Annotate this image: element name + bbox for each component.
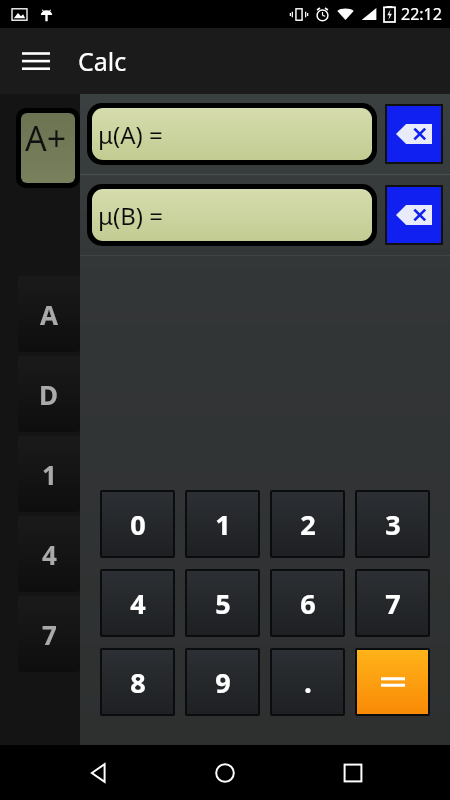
button[interactable]: 7 bbox=[357, 571, 428, 635]
button[interactable]: 9 bbox=[187, 650, 258, 714]
button[interactable]: Back bbox=[68, 745, 128, 800]
button[interactable]: A+ bbox=[21, 113, 75, 183]
staticText: D bbox=[39, 377, 59, 412]
staticText: 8 bbox=[130, 664, 146, 701]
button[interactable]: 5 bbox=[187, 571, 258, 635]
button[interactable]: Recent apps bbox=[323, 745, 383, 800]
staticText: 5 bbox=[215, 585, 231, 622]
button[interactable]: 1 bbox=[18, 436, 80, 512]
button[interactable]: Home bbox=[195, 745, 255, 800]
button[interactable]: 7 bbox=[18, 596, 80, 672]
button[interactable]: D bbox=[18, 356, 80, 432]
staticText: μ(B) = bbox=[98, 199, 163, 232]
button[interactable]: 2 bbox=[272, 492, 343, 556]
button[interactable]: μ(A) = bbox=[92, 108, 372, 160]
staticText: 6 bbox=[300, 585, 316, 622]
staticText: 22:12 bbox=[401, 3, 442, 25]
staticText: 2 bbox=[300, 506, 316, 543]
staticText: 4 bbox=[130, 585, 146, 622]
staticText: A bbox=[40, 297, 58, 332]
staticText: 7 bbox=[42, 617, 57, 652]
button[interactable]: Backspace bbox=[387, 106, 441, 162]
button[interactable]: 4 bbox=[18, 516, 80, 592]
button[interactable]: 1 bbox=[187, 492, 258, 556]
staticText: 0 bbox=[130, 506, 146, 543]
staticText: 1 bbox=[215, 506, 231, 543]
button[interactable]: Open navigation drawer bbox=[14, 39, 58, 83]
staticText: 1 bbox=[42, 457, 57, 492]
button[interactable]: 3 bbox=[357, 492, 428, 556]
staticText: 3 bbox=[385, 506, 401, 543]
staticText: μ(A) = bbox=[98, 118, 163, 151]
button[interactable]: . bbox=[272, 650, 343, 714]
button[interactable]: 4 bbox=[102, 571, 173, 635]
staticText: A+ bbox=[25, 115, 67, 161]
button[interactable]: A bbox=[18, 276, 80, 352]
staticText: 9 bbox=[215, 664, 231, 701]
button[interactable]: 6 bbox=[272, 571, 343, 635]
button[interactable] bbox=[357, 650, 428, 714]
staticText: 4 bbox=[42, 537, 57, 572]
staticText: 7 bbox=[385, 585, 401, 622]
staticText: . bbox=[304, 663, 312, 701]
button[interactable]: 8 bbox=[102, 650, 173, 714]
button[interactable]: Backspace bbox=[387, 187, 441, 243]
staticText: Calc bbox=[78, 44, 127, 78]
button[interactable]: μ(B) = bbox=[92, 189, 372, 241]
button[interactable]: 0 bbox=[102, 492, 173, 556]
